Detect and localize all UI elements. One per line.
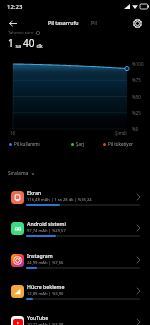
staticText: sa [14,42,23,49]
staticText: 40 [23,36,35,50]
staticText: 10,21 mAh | %3,09 [27,322,64,325]
staticText: dk [35,42,43,49]
staticText: Pil [91,19,97,26]
button[interactable]: Ekran [0,186,150,217]
staticText: YouTube [27,314,49,321]
staticText: Hücre bekleme [27,283,65,290]
staticText: Sıralama [8,170,29,177]
staticText: 116,48 mAh | 1 sa 28 dk | %35,24 [27,197,92,203]
staticText: Pil kullanımı [14,141,40,147]
button[interactable]: Pil tasarrufu [46,17,81,28]
button[interactable]: Ayarlar [128,14,146,32]
staticText: Pil tasarrufu [48,19,79,26]
staticText: %0 [132,126,139,132]
button[interactable]: Android sistemi [0,217,150,248]
button[interactable]: YouTube [0,311,150,325]
button[interactable]: Instagram [0,249,150,280]
staticText: 12,89 mAh | %3,90 [27,291,64,297]
staticText: Instagram [27,252,53,259]
staticText: 12:23 [7,3,23,11]
button[interactable]: Geri [4,14,22,32]
button[interactable]: Sıralama [6,168,37,179]
staticText: %50 [132,94,141,100]
staticText: Şimdi [115,130,127,136]
button[interactable]: Pil [89,17,99,28]
staticText: %25 [132,110,141,116]
staticText: 1 [8,36,14,50]
staticText: Tahmini süre [8,30,34,36]
staticText: Şarj [76,141,85,147]
staticText: 97,74 mAh | %29,57 [27,228,66,234]
staticText: Ekran [27,189,42,196]
staticText: %100 [132,61,144,67]
staticText: 16 [10,130,16,136]
staticText: %75 [132,77,141,83]
staticText: Pil tüketiyor [108,141,134,147]
button[interactable]: Hücre bekleme [0,280,150,311]
staticText: Android sistemi [27,220,66,227]
staticText: 24,99 mAh | %7,56 [27,260,64,266]
